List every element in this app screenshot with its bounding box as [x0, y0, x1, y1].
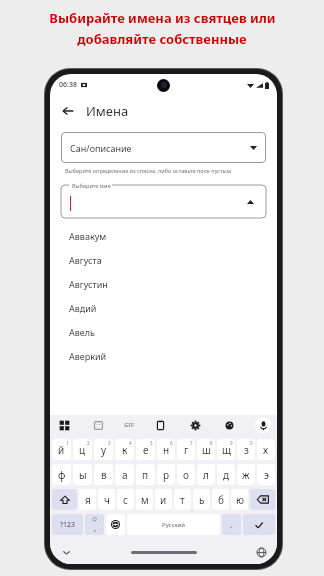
- button[interactable]: Авель: [61, 320, 266, 344]
- button[interactable]: р: [157, 464, 175, 485]
- staticText: 06:38: [59, 80, 77, 90]
- button[interactable]: п: [136, 464, 155, 485]
- staticText: к: [122, 443, 128, 457]
- button[interactable]: с: [117, 489, 134, 510]
- button[interactable]: Voice input: [255, 417, 271, 433]
- staticText: у: [101, 443, 107, 457]
- button[interactable]: у: [94, 439, 113, 460]
- staticText: ш: [202, 443, 211, 457]
- staticText: в: [101, 468, 107, 482]
- button[interactable]: в: [94, 464, 113, 485]
- button[interactable]: Stickers: [90, 417, 106, 433]
- button[interactable]: ?123: [52, 514, 83, 535]
- staticText: 5: [150, 440, 153, 446]
- button[interactable]: Change language: [106, 514, 125, 535]
- button[interactable]: х: [257, 439, 275, 460]
- button[interactable]: а: [115, 464, 134, 485]
- staticText: д: [223, 468, 230, 482]
- button[interactable]: Collapse: [242, 194, 258, 210]
- button[interactable]: к: [115, 439, 134, 460]
- button[interactable]: л: [197, 464, 215, 485]
- button[interactable]: Apps: [56, 417, 72, 433]
- staticText: х: [263, 443, 269, 457]
- button[interactable]: Сан/описание: [61, 132, 266, 163]
- staticText: н: [163, 443, 170, 457]
- staticText: 7: [190, 440, 193, 446]
- staticText: 3: [108, 440, 111, 446]
- staticText: ж: [242, 468, 250, 482]
- button[interactable]: т: [174, 489, 191, 510]
- staticText: ☺: [92, 516, 98, 522]
- button[interactable]: Language: [253, 544, 269, 560]
- staticText: я: [85, 493, 91, 507]
- staticText: о: [183, 468, 189, 482]
- button[interactable]: о: [177, 464, 195, 485]
- button[interactable]: ь: [193, 489, 210, 510]
- button[interactable]: Августин: [61, 272, 266, 296]
- button[interactable]: щ: [217, 439, 235, 460]
- button[interactable]: Hide keyboard: [58, 544, 74, 560]
- staticText: Русский: [162, 521, 185, 529]
- button[interactable]: й: [52, 439, 71, 460]
- staticText: б: [218, 493, 224, 507]
- button[interactable]: Shift: [52, 489, 77, 510]
- button[interactable]: Аверкий: [61, 344, 266, 368]
- button[interactable]: .: [222, 514, 241, 535]
- button[interactable]: г: [177, 439, 195, 460]
- button[interactable]: ы: [73, 464, 92, 485]
- button[interactable]: Русский: [127, 514, 220, 535]
- button[interactable]: Settings: [187, 417, 203, 433]
- button[interactable]: Аввакум: [61, 224, 266, 248]
- button[interactable]: Августа: [61, 248, 266, 272]
- button[interactable]: м: [136, 489, 153, 510]
- staticText: ,: [94, 522, 97, 533]
- staticText: з: [244, 443, 249, 457]
- button[interactable]: д: [217, 464, 235, 485]
- button[interactable]: е: [136, 439, 155, 460]
- button[interactable]: Enter: [243, 514, 275, 535]
- staticText: 1: [66, 440, 69, 446]
- staticText: Имена: [86, 102, 129, 120]
- button[interactable]: ш: [197, 439, 215, 460]
- staticText: 9: [230, 440, 233, 446]
- button[interactable]: э: [257, 464, 275, 485]
- button[interactable]: Back: [57, 100, 79, 122]
- button[interactable]: Backspace: [250, 489, 275, 510]
- staticText: GIF: [124, 421, 134, 429]
- staticText: щ: [222, 443, 231, 457]
- button[interactable]: б: [212, 489, 229, 510]
- button[interactable]: з: [237, 439, 255, 460]
- staticText: 4: [129, 440, 132, 446]
- button[interactable]: ц: [73, 439, 92, 460]
- staticText: с: [123, 493, 128, 507]
- staticText: добавляйте собственные: [77, 30, 247, 48]
- staticText: г: [184, 443, 189, 457]
- staticText: м: [141, 493, 149, 507]
- staticText: Авдий: [69, 302, 97, 314]
- staticText: Аввакум: [69, 230, 107, 242]
- staticText: 6: [170, 440, 173, 446]
- button[interactable]: ☺: [85, 514, 104, 535]
- staticText: Выберите имя: [72, 182, 111, 189]
- staticText: п: [142, 468, 149, 482]
- staticText: 8: [210, 440, 213, 446]
- staticText: ь: [199, 493, 205, 507]
- staticText: т: [180, 493, 185, 507]
- staticText: а: [122, 468, 128, 482]
- button[interactable]: Themes: [221, 417, 237, 433]
- button[interactable]: н: [157, 439, 175, 460]
- staticText: Выбирайте имена из святцев или: [49, 9, 276, 27]
- staticText: й: [58, 443, 65, 457]
- button[interactable]: ю: [231, 489, 248, 510]
- button[interactable]: ч: [98, 489, 115, 510]
- button[interactable]: я: [79, 489, 96, 510]
- staticText: Августа: [69, 254, 102, 266]
- button[interactable]: Авдий: [61, 296, 266, 320]
- staticText: Августин: [69, 278, 108, 290]
- button[interactable]: ж: [237, 464, 255, 485]
- staticText: Аверкий: [69, 350, 107, 362]
- button[interactable]: Clipboard: [152, 417, 168, 433]
- staticText: .: [230, 519, 233, 530]
- button[interactable]: ф: [52, 464, 71, 485]
- button[interactable]: и: [155, 489, 172, 510]
